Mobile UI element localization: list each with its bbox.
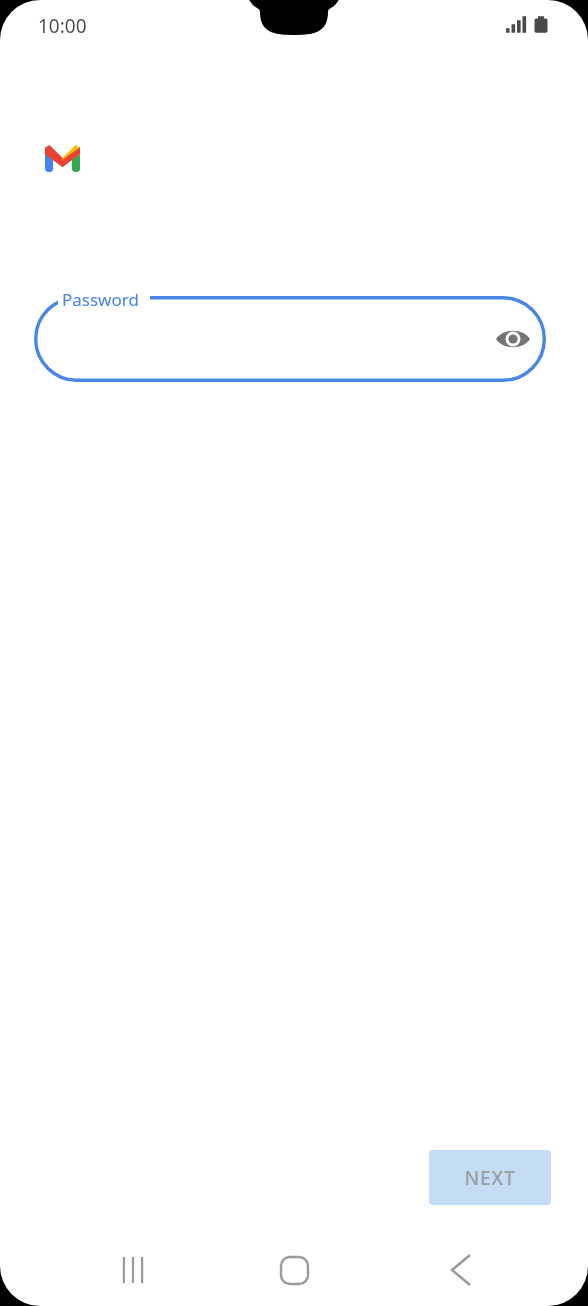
button[interactable]: Back	[429, 1238, 493, 1302]
button[interactable]: Home	[262, 1238, 326, 1302]
button[interactable]: Show password	[34, 296, 546, 382]
staticText: Password	[62, 288, 139, 311]
staticText: NEXT	[464, 1165, 516, 1191]
button[interactable]: Recent apps	[101, 1238, 165, 1302]
button[interactable]: NEXT	[429, 1150, 551, 1205]
button[interactable]: Show password	[489, 315, 537, 363]
staticText: 10:00	[38, 13, 87, 39]
